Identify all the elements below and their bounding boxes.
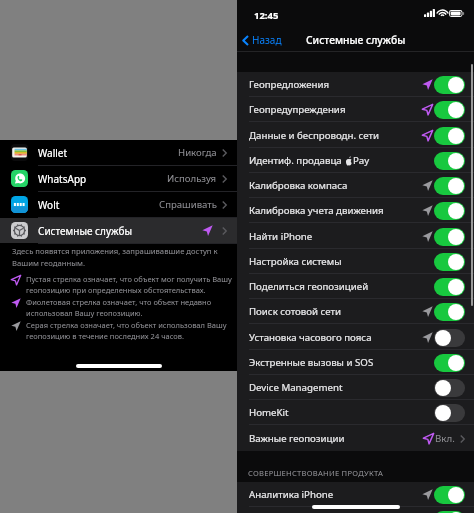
button[interactable]: Установка часового пояса [237, 325, 474, 350]
staticText: Вкл. [435, 432, 455, 445]
button[interactable]: Toggle on [434, 354, 465, 372]
staticText: Идентиф. продавца [249, 154, 345, 167]
staticText: СОВЕРШЕНСТВОВАНИЕ ПРОДУКТА [248, 468, 383, 478]
button[interactable]: Улучшение Карт [237, 507, 474, 513]
button[interactable]: Данные и беспроводн. сети [237, 123, 474, 148]
button[interactable]: Toggle on [434, 486, 465, 504]
staticText: Спрашивать [159, 198, 217, 211]
button[interactable]: Геопредупреждения [237, 97, 474, 122]
staticText: Аналитика iPhone [249, 488, 334, 501]
button[interactable]: Найти iPhone [237, 224, 474, 249]
staticText: 12:45 [254, 9, 279, 22]
button[interactable]: Настройка системы [237, 249, 474, 274]
staticText: Используя [167, 172, 217, 185]
button[interactable]: Toggle on [434, 177, 465, 195]
button[interactable]: Wallet [0, 140, 237, 165]
button[interactable]: Toggle on [434, 202, 465, 220]
button[interactable]: Toggle off [434, 404, 465, 422]
button[interactable]: Калибровка учета движения [237, 198, 474, 223]
staticText: Важные геопозиции [249, 432, 345, 445]
button[interactable]: Важные геопозиции [237, 426, 474, 451]
button[interactable]: Toggle on [434, 278, 465, 296]
button[interactable]: Toggle on [434, 303, 465, 321]
button[interactable]: Toggle on [434, 101, 465, 119]
button[interactable]: Идентиф. продавца [237, 148, 474, 173]
staticText: WhatsApp [38, 172, 87, 186]
staticText: Назад [252, 33, 282, 47]
button[interactable]: Геопредложения [237, 72, 474, 97]
staticText: Найти iPhone [249, 230, 313, 243]
staticText: Wolt [38, 198, 60, 212]
button[interactable]: Toggle on [434, 511, 465, 513]
button[interactable]: Toggle on [434, 253, 465, 271]
button[interactable]: Toggle on [434, 152, 465, 170]
staticText: Установка часового пояса [249, 331, 372, 344]
staticText: Калибровка учета движения [249, 204, 384, 217]
staticText: Здесь появятся приложения, запрашивавшие… [12, 246, 218, 268]
staticText: Данные и беспроводн. сети [249, 129, 380, 142]
staticText: Фиолетовая стрелка означает, что объект … [26, 297, 212, 318]
staticText: Геопредупреждения [249, 103, 346, 116]
button[interactable]: Toggle on [434, 127, 465, 145]
staticText: Пустая стрелка означает, что объект мог … [26, 274, 232, 295]
staticText: Системные службы [306, 33, 406, 47]
button[interactable]: Экстренные вызовы и SOS [237, 350, 474, 375]
staticText: Wallet [38, 146, 68, 160]
button[interactable]: Аналитика iPhone [237, 482, 474, 507]
button[interactable]: Поделиться геопозицией [237, 274, 474, 299]
button[interactable]: Калибровка компаса [237, 173, 474, 198]
button[interactable]: HomeKit [237, 400, 474, 425]
staticText: Pay [353, 154, 370, 167]
button[interactable]: Системные службы [0, 218, 237, 243]
staticText: Device Management [249, 381, 343, 394]
button[interactable]: WhatsApp [0, 166, 237, 191]
button[interactable]: Device Management [237, 375, 474, 400]
staticText: Поиск сотовой сети [249, 305, 342, 318]
staticText: Никогда [178, 146, 217, 159]
staticText: Геопредложения [249, 78, 330, 91]
button[interactable]: Назад [237, 33, 288, 47]
staticText: Калибровка компаса [249, 179, 348, 192]
staticText: Серая стрелка означает, что объект испол… [26, 320, 227, 341]
button[interactable]: Wolt [0, 192, 237, 217]
button[interactable]: Поиск сотовой сети [237, 299, 474, 324]
button[interactable]: Toggle off [434, 379, 465, 397]
button[interactable]: Toggle on [434, 76, 465, 94]
staticText: Настройка системы [249, 255, 342, 268]
button[interactable]: Toggle on [434, 228, 465, 246]
staticText: HomeKit [249, 406, 289, 419]
staticText: Экстренные вызовы и SOS [249, 356, 374, 369]
staticText: Поделиться геопозицией [249, 280, 369, 293]
button[interactable]: Toggle off [434, 329, 465, 347]
staticText: Системные службы [38, 224, 133, 238]
